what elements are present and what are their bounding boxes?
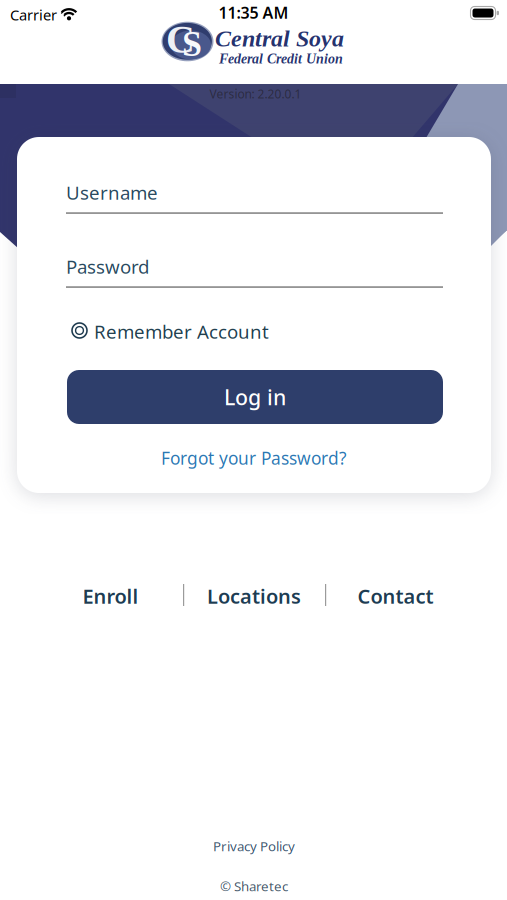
button[interactable]: Username [66,180,443,214]
staticText: Contact [357,583,433,609]
staticText: Username [66,180,158,205]
staticText: C [166,17,195,61]
staticText: Enroll [82,583,138,609]
staticText: Carrier [10,5,57,24]
staticText: Central Soya [215,25,344,52]
button[interactable]: Forgot your Password? [124,445,384,471]
staticText: S [182,24,202,64]
staticText: Log in [224,383,286,411]
staticText: © Sharetec [220,877,288,895]
staticText: 11:35 AM [218,2,288,23]
button[interactable]: Privacy Policy [164,837,344,855]
staticText: Privacy Policy [213,837,295,855]
button[interactable]: Locations [189,583,319,609]
staticText: Version: 2.20.0.1 [209,86,301,102]
staticText: Password [66,254,149,279]
button[interactable]: Enroll [45,583,175,609]
button[interactable]: Remember Account [71,313,321,349]
staticText: Remember Account [94,319,269,344]
button[interactable]: Log in [67,370,443,424]
staticText: Forgot your Password? [161,446,347,469]
button[interactable]: Contact [330,583,460,609]
staticText: Federal Credit Union [219,51,343,66]
button[interactable]: Password [66,254,443,288]
staticText: Locations [207,583,301,609]
